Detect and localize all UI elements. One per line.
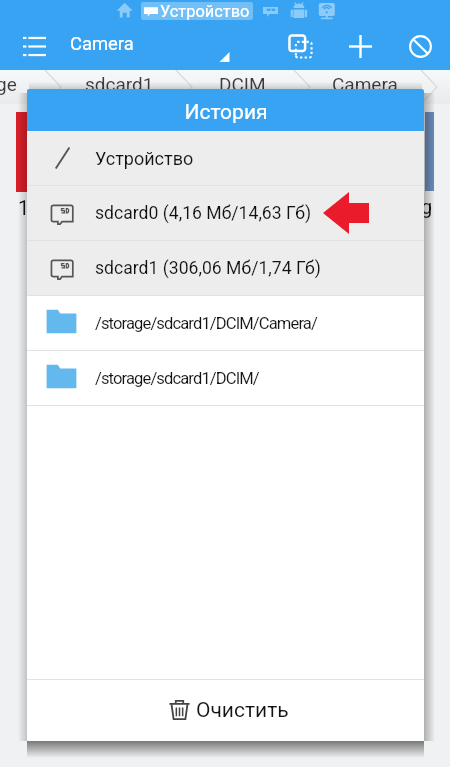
button[interactable]: sdcard1 (306,06 Мб/1,74 Гб) [27,241,424,295]
staticText: История [184,100,268,125]
staticText: Устройство [160,2,250,20]
button[interactable]: /storage/sdcard1/DCIM/ [27,351,424,405]
button[interactable]: Add [337,23,383,69]
button[interactable]: /storage/sdcard1/DCIM/Camera/ [27,296,424,350]
staticText: /storage/sdcard1/DCIM/Camera/ [95,314,317,333]
button[interactable]: Устройство [27,131,424,185]
staticText: ge [0,73,17,95]
button[interactable]: sdcard0 (4,16 Мб/14,63 Гб) [27,186,424,240]
staticText: 1 [18,196,30,219]
button[interactable]: Очистить [27,680,424,741]
staticText: sdcard1 [85,73,154,95]
staticText: Camera [70,33,134,55]
button[interactable]: Cancel [397,23,443,69]
button[interactable]: Menu [12,24,57,69]
button[interactable]: Select all [277,23,323,69]
staticText: g [421,195,433,218]
staticText: sdcard1 (306,06 Мб/1,74 Гб) [95,258,321,279]
staticText: Очистить [196,698,289,723]
button[interactable]: Device tab [143,2,250,20]
staticText: Camera [332,73,398,95]
staticText: Устройство [95,148,194,169]
staticText: /storage/sdcard1/DCIM/ [95,369,259,388]
staticText: DCIM [219,73,266,95]
staticText: sdcard0 (4,16 Мб/14,63 Гб) [95,203,312,224]
